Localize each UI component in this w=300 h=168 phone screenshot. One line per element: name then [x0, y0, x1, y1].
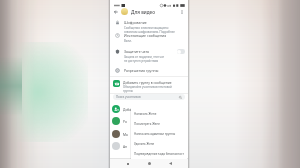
button[interactable]: Подтверждение кода безопасности — [131, 149, 187, 158]
button[interactable]: Поиск участников — [113, 94, 185, 100]
button[interactable]: Back — [112, 8, 120, 16]
staticText: Назначить админом группы — [134, 132, 176, 136]
button[interactable]: Написать Жене — [131, 109, 187, 119]
button[interactable]: Recent apps — [123, 159, 132, 168]
staticText: Объединяйте участников текстовой группы — [123, 85, 172, 92]
button[interactable]: Назначить админом группы — [131, 129, 187, 139]
button[interactable]: Разрешения группы — [110, 67, 188, 75]
staticText: Ро — [123, 119, 127, 123]
button[interactable]: Добавить участников — [110, 103, 188, 114]
button[interactable]: Добавить группу в сообщение — [110, 79, 188, 92]
staticText: Исчезающие сообщения — [124, 33, 167, 38]
staticText: Подтверждение кода безопасности — [134, 152, 184, 156]
button[interactable]: Toggle chat lock — [177, 49, 185, 54]
button[interactable]: Ан — [110, 140, 188, 151]
button[interactable]: Home — [145, 159, 154, 168]
staticText: Защита от подделки, этот чат не доступен… — [124, 55, 165, 62]
staticText: Ма — [123, 132, 128, 136]
button[interactable]: Ро — [110, 115, 188, 126]
staticText: Посмотреть Жене — [134, 122, 160, 126]
button[interactable]: More options — [178, 8, 186, 16]
staticText: Разрешения группы — [124, 68, 159, 73]
button[interactable]: Посмотреть Жене — [131, 119, 187, 129]
staticText: Выкл. — [124, 39, 132, 43]
button[interactable]: Исчезающие сообщения — [110, 32, 188, 45]
staticText: Ан — [123, 144, 128, 148]
staticText: Добавить группу в сообщение — [123, 80, 172, 84]
staticText: Поиск участников — [116, 95, 141, 99]
staticText: Для видео — [131, 9, 155, 15]
staticText: Удалить Жене — [134, 142, 155, 146]
staticText: Защитите чата — [124, 49, 150, 54]
staticText: Шифрование — [124, 20, 147, 25]
button[interactable]: Защитите чата — [110, 48, 188, 61]
button[interactable]: Back — [166, 159, 175, 168]
staticText: Добавить участников — [123, 107, 158, 111]
staticText: Сообщения и звонки защищены сквозным шиф… — [124, 26, 175, 33]
button[interactable]: Удалить Жене — [131, 139, 187, 149]
button[interactable]: Ма — [110, 128, 188, 139]
staticText: Написать Жене — [134, 112, 157, 116]
button[interactable]: Шифрование — [110, 19, 188, 32]
